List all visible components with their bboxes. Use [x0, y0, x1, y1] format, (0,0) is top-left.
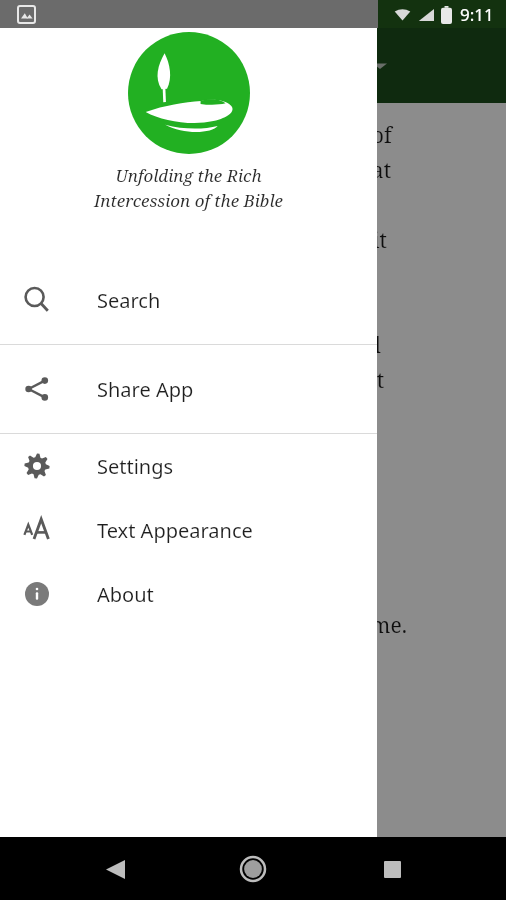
- button[interactable]: Search: [0, 256, 377, 344]
- staticText: Text Appearance: [97, 517, 253, 544]
- button[interactable]: Text Appearance: [0, 498, 377, 562]
- button[interactable]: About: [0, 562, 377, 626]
- staticText: , “You: [300, 401, 358, 436]
- staticText: my trust: [300, 366, 385, 401]
- staticText: Settings: [97, 453, 174, 480]
- button[interactable]: Share App: [0, 345, 377, 433]
- staticText: Search: [97, 287, 161, 314]
- staticText: Unfolding the Rich: [0, 164, 377, 187]
- staticText: before me.: [300, 611, 407, 646]
- staticText: e what it: [300, 226, 387, 261]
- button[interactable]: Back: [91, 845, 139, 893]
- button[interactable]: Settings: [0, 434, 377, 498]
- staticText: pray that: [300, 156, 392, 191]
- staticText: to give of: [300, 121, 392, 156]
- staticText: ey have: [300, 436, 378, 471]
- staticText: 9:11: [460, 3, 494, 26]
- button[interactable]: Recent apps: [368, 845, 416, 893]
- staticText: Intercession of the Bible: [0, 189, 377, 212]
- staticText: Share App: [97, 376, 194, 403]
- staticText: About: [97, 581, 154, 608]
- button[interactable]: Home: [229, 845, 277, 893]
- staticText: ory, and: [300, 331, 381, 366]
